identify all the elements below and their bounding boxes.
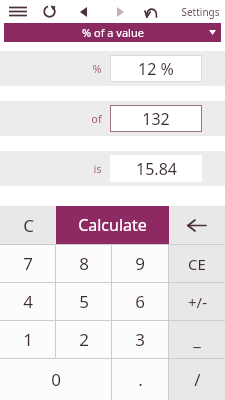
button[interactable]: Backspace (169, 206, 225, 244)
staticText: CE (188, 254, 206, 274)
staticText: C (23, 214, 34, 237)
button[interactable]: 5 (56, 283, 111, 320)
button[interactable]: 2 (56, 321, 111, 358)
button[interactable]: . (112, 359, 168, 400)
button[interactable]: +/- (169, 283, 225, 320)
staticText: _ (193, 328, 201, 351)
staticText: 0 (51, 368, 61, 391)
staticText: . (138, 368, 143, 391)
staticText: Calculate (78, 214, 147, 236)
staticText: 2 (79, 328, 89, 351)
button[interactable]: of (0, 101, 225, 136)
staticText: 9 (135, 252, 145, 275)
staticText: +/- (188, 292, 207, 312)
button[interactable]: Settings (181, 5, 220, 19)
staticText: 3 (135, 328, 145, 351)
button[interactable]: _ (169, 321, 225, 358)
button[interactable]: 7 (0, 245, 55, 282)
button[interactable]: % (0, 51, 225, 86)
staticText: / (194, 368, 201, 391)
staticText: % of a value (82, 25, 144, 40)
button[interactable]: Calculate (56, 206, 169, 244)
button[interactable]: is (0, 151, 225, 186)
button[interactable]: Reset (36, 0, 62, 23)
button[interactable]: 9 (112, 245, 168, 282)
staticText: % (92, 61, 102, 76)
button[interactable]: 3 (112, 321, 168, 358)
button[interactable]: 8 (56, 245, 111, 282)
button[interactable]: Menu (4, 0, 32, 23)
staticText: 6 (135, 290, 145, 313)
staticText: 15.84 (136, 158, 177, 180)
button[interactable]: 1 (0, 321, 55, 358)
staticText: 8 (79, 252, 89, 275)
staticText: 12 % (138, 58, 174, 80)
button[interactable]: C (0, 206, 56, 244)
button[interactable]: / (169, 359, 225, 400)
staticText: 1 (23, 328, 33, 351)
button[interactable]: 0 (0, 359, 111, 400)
button[interactable]: % of a value (4, 23, 221, 42)
staticText: 4 (23, 290, 33, 313)
staticText: 132 (142, 108, 170, 130)
staticText: 5 (79, 290, 89, 313)
button[interactable]: Next (109, 0, 131, 23)
button[interactable]: Undo (139, 0, 163, 23)
button[interactable]: 4 (0, 283, 55, 320)
staticText: Settings (181, 5, 220, 19)
staticText: 7 (23, 252, 33, 275)
button[interactable]: 6 (112, 283, 168, 320)
button[interactable]: CE (169, 245, 225, 282)
staticText: is (93, 161, 102, 176)
staticText: of (91, 111, 102, 126)
button[interactable]: Previous (72, 0, 94, 23)
